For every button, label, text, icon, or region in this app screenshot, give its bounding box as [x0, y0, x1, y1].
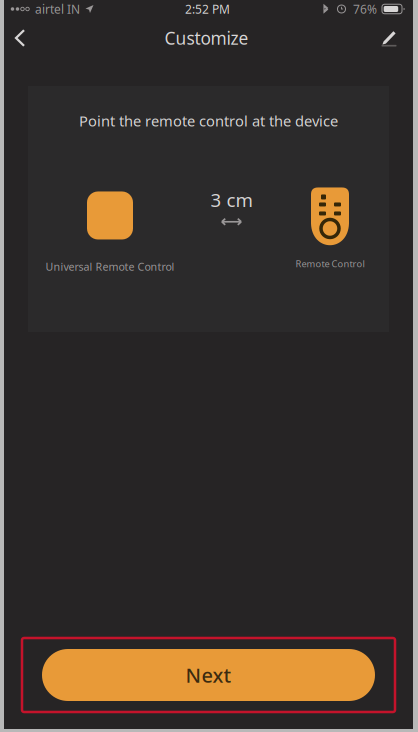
staticText: Universal Remote Control: [45, 259, 174, 274]
staticText: 2:52 PM: [185, 1, 230, 17]
staticText: Point the remote control at the device: [79, 111, 338, 130]
button[interactable]: Back: [4, 18, 36, 58]
button[interactable]: Edit: [369, 18, 409, 58]
staticText: 3 cm: [210, 187, 252, 212]
staticText: 76%: [353, 1, 377, 17]
staticText: airtel IN: [35, 1, 80, 17]
staticText: Customize: [164, 26, 248, 49]
button[interactable]: Next: [42, 649, 375, 701]
staticText: Next: [185, 662, 231, 688]
staticText: Remote Control: [295, 257, 364, 270]
